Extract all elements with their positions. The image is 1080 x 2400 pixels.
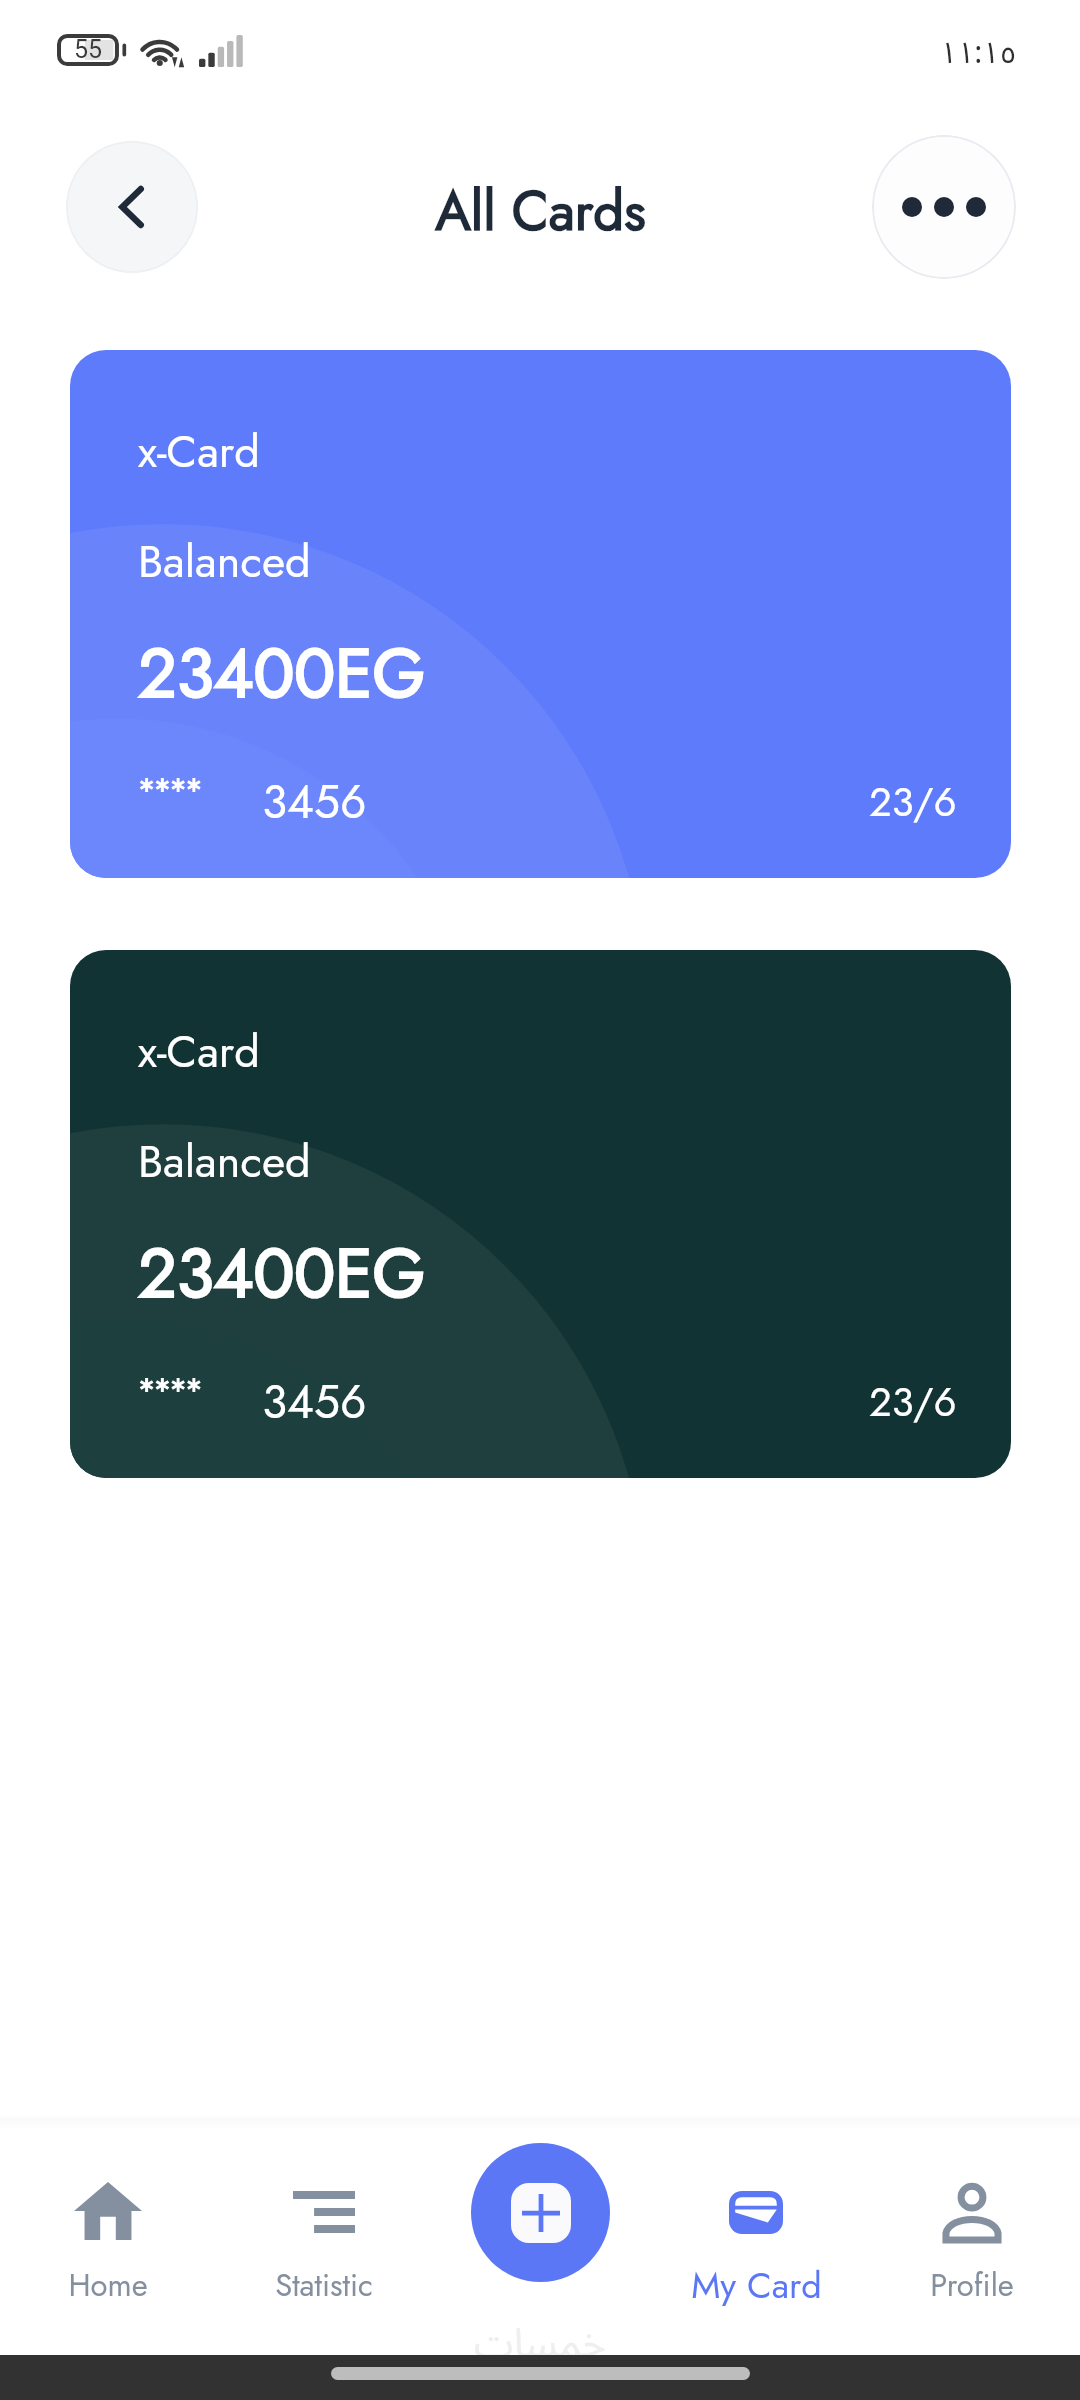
- staticText: ١١:١٥: [940, 22, 1017, 85]
- staticText: 23400EG: [138, 624, 426, 722]
- button[interactable]: My Card: [656, 2177, 856, 2310]
- button[interactable]: Home: [8, 2168, 208, 2310]
- staticText: Balanced: [138, 529, 311, 594]
- staticText: All Cards: [435, 172, 646, 250]
- button[interactable]: x-Card: [70, 350, 1011, 878]
- staticText: Statistic: [275, 2263, 373, 2308]
- button[interactable]: More options: [872, 135, 1016, 279]
- staticText: 23400EG: [138, 1224, 426, 1322]
- staticText: 55: [57, 35, 119, 64]
- staticText: Profile: [930, 2263, 1014, 2308]
- button[interactable]: Add card: [471, 2143, 610, 2282]
- staticText: 23/6: [869, 1373, 957, 1431]
- staticText: خمسات: [474, 2302, 607, 2386]
- staticText: 23/6: [869, 773, 957, 831]
- staticText: 3456: [262, 1369, 367, 1435]
- staticText: Home: [68, 2263, 148, 2308]
- button[interactable]: Back: [66, 141, 198, 273]
- staticText: x-Card: [138, 1019, 260, 1084]
- staticText: Balanced: [138, 1129, 311, 1194]
- button[interactable]: x-Card: [70, 950, 1011, 1478]
- button[interactable]: Statistic: [224, 2177, 424, 2310]
- button[interactable]: Profile: [872, 2170, 1072, 2310]
- staticText: My Card: [691, 2259, 822, 2311]
- staticText: x-Card: [138, 419, 260, 484]
- staticText: 3456: [262, 769, 367, 835]
